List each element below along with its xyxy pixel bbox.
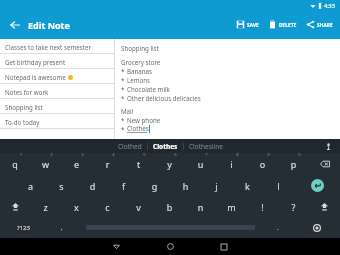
staticText: Clothes [153, 142, 178, 151]
staticText: 6 [160, 152, 191, 158]
button[interactable]: m [216, 196, 247, 217]
button[interactable]: z [30, 196, 61, 217]
staticText: e [61, 158, 92, 170]
button[interactable]: Clothesline [184, 142, 228, 151]
staticText: * [121, 85, 125, 93]
button[interactable]: x [61, 196, 92, 217]
button[interactable]: Back [89, 238, 143, 255]
button[interactable]: Shift [0, 196, 30, 217]
staticText: Shopping list [5, 103, 43, 111]
button[interactable]: s [46, 175, 77, 196]
staticText: Clothed [118, 142, 142, 151]
staticText: * [121, 76, 125, 84]
button[interactable]: Period [262, 217, 294, 238]
staticText: ?123 [17, 224, 30, 232]
staticText: Get birthday present [5, 58, 66, 66]
button[interactable]: a [15, 175, 46, 196]
button[interactable]: Enter [294, 175, 340, 196]
staticText: x [61, 201, 92, 213]
staticText: Mall [121, 107, 134, 115]
staticText: Lemons [127, 76, 151, 84]
button[interactable]: SAVE [235, 17, 260, 32]
button[interactable]: Notepad is awesome [0, 69, 114, 84]
button[interactable]: t [123, 153, 154, 175]
button[interactable]: v [123, 196, 154, 217]
button[interactable]: e [61, 153, 92, 175]
staticText: s [46, 180, 77, 192]
button[interactable]: h [170, 175, 201, 196]
staticText: New phone [127, 116, 161, 124]
staticText: Shopping list [121, 44, 159, 52]
staticText: 9 [253, 152, 284, 158]
button[interactable]: u [185, 153, 216, 175]
button[interactable]: j [201, 175, 232, 196]
button[interactable]: Home [143, 238, 197, 255]
staticText: Notes for work [5, 88, 49, 96]
staticText: b [154, 201, 185, 213]
button[interactable]: f [108, 175, 139, 196]
button[interactable]: k [232, 175, 263, 196]
staticText: * [121, 116, 125, 124]
staticText: q [0, 158, 30, 170]
button[interactable]: r [92, 153, 123, 175]
button[interactable]: SHARE [305, 17, 334, 32]
staticText: ? [278, 201, 309, 213]
button[interactable]: b [154, 196, 185, 217]
staticText: 4 [98, 152, 129, 158]
staticText: DELETE [279, 22, 297, 28]
button[interactable]: c [92, 196, 123, 217]
button[interactable]: Recents [197, 238, 251, 255]
staticText: u [185, 158, 216, 170]
button[interactable]: Comma [46, 217, 78, 238]
staticText: * [121, 94, 125, 102]
button[interactable]: d [77, 175, 108, 196]
button[interactable]: Emoji [294, 217, 340, 238]
staticText: r [92, 158, 123, 170]
button[interactable]: Clothes [148, 142, 183, 151]
staticText: ! [247, 201, 278, 213]
button[interactable]: Space [78, 217, 262, 238]
button[interactable]: Classes to take next semester [0, 39, 114, 54]
button[interactable]: Voice input [324, 142, 333, 151]
staticText: o [247, 158, 278, 170]
staticText: h [170, 180, 201, 192]
button[interactable]: Clothed [113, 142, 147, 151]
button[interactable]: l [263, 175, 294, 196]
button[interactable]: i [216, 153, 247, 175]
staticText: g [139, 180, 170, 192]
button[interactable]: ? [278, 196, 309, 217]
button[interactable]: Back [6, 16, 24, 34]
staticText: Bananas [127, 67, 153, 75]
button[interactable]: n [185, 196, 216, 217]
staticText: c [92, 201, 123, 213]
staticText: Clothesline [189, 142, 223, 151]
staticText: m [216, 201, 247, 213]
button[interactable]: p [278, 153, 309, 175]
button[interactable]: y [154, 153, 185, 175]
button[interactable]: o [247, 153, 278, 175]
staticText: p [278, 158, 309, 170]
button[interactable]: ?123 [0, 217, 46, 238]
button[interactable]: Backspace [309, 153, 340, 175]
button[interactable]: w [30, 153, 61, 175]
staticText: SAVE [247, 22, 259, 28]
button[interactable]: g [139, 175, 170, 196]
staticText: y [154, 158, 185, 170]
button[interactable]: Get birthday present [0, 54, 114, 69]
staticText: Notepad is awesome [5, 73, 66, 81]
staticText: w [30, 158, 61, 170]
button[interactable]: DELETE [267, 17, 298, 32]
button[interactable]: ! [247, 196, 278, 217]
staticText: 0 [284, 152, 315, 158]
button[interactable]: To-do today [0, 114, 114, 129]
button[interactable]: Notes for work [0, 84, 114, 99]
button[interactable]: q [0, 153, 30, 175]
staticText: To-do today [5, 118, 40, 126]
staticText: , [61, 224, 63, 232]
staticText: 5 [129, 152, 160, 158]
staticText: t [123, 158, 154, 170]
button[interactable]: Shift [309, 196, 340, 217]
button[interactable]: Shopping list [0, 99, 114, 114]
staticText: 7 [191, 152, 222, 158]
staticText: f [108, 180, 139, 192]
